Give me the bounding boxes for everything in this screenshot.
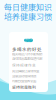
staticText: 多喝水的好处 [12, 46, 42, 53]
staticText: 充足睡眠让身体恢复 [12, 68, 39, 73]
staticText: 培养健康习惯 [4, 10, 52, 22]
staticText: 坚持就是胜利 [12, 84, 36, 90]
staticText: 均衡饮食营养全面 [12, 78, 36, 83]
staticText: 保持规律作息 [12, 62, 36, 68]
staticText: 每日健康知识 [4, 1, 52, 13]
staticText: 适量运动增强体质 [12, 73, 36, 78]
staticText: 健康小贴士 [24, 35, 33, 45]
staticText: 每天喝足八杯水能帮助 [12, 51, 42, 56]
staticText: 身体排出毒素促进代谢 [12, 56, 42, 61]
